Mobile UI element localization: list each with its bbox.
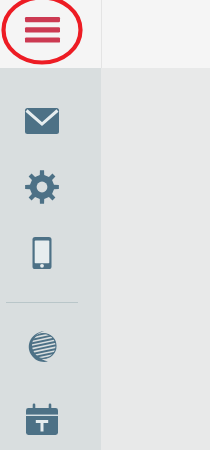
button[interactable]: Settings [20,165,64,209]
button[interactable]: Globe [20,324,64,368]
button[interactable]: Mobile device [20,231,64,275]
button[interactable]: Mail [20,99,64,143]
button[interactable]: Open navigation menu [0,0,86,66]
button[interactable]: Calendar [20,397,64,441]
